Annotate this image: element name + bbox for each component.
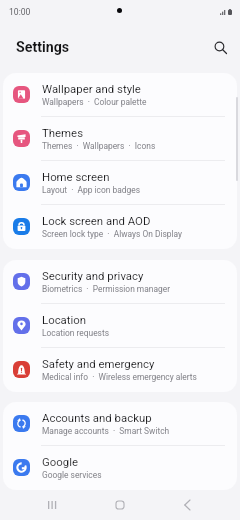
staticText: Screen lock type · Always On Display [42, 229, 182, 239]
staticText: Security and privacy [42, 269, 144, 282]
staticText: Themes [42, 126, 84, 139]
staticText: Home screen [42, 170, 110, 183]
staticText: Manage accounts · Smart Switch [42, 426, 170, 436]
staticText: Layout · App icon badges [42, 185, 141, 195]
button[interactable]: Lock screen and AOD [3, 205, 237, 249]
button[interactable]: Location [3, 304, 237, 348]
button[interactable]: Accounts and backup [3, 402, 237, 446]
staticText: Google services [42, 470, 102, 480]
staticText: Biometrics · Permission manager [42, 284, 170, 294]
staticText: Google [42, 455, 78, 468]
button[interactable]: Home [103, 490, 137, 520]
staticText: Wallpapers · Colour palette [42, 97, 147, 107]
button[interactable]: Wallpaper and style [3, 73, 237, 117]
button[interactable]: Search [209, 36, 233, 60]
staticText: Lock screen and AOD [42, 214, 151, 227]
staticText: Safety and emergency [42, 357, 155, 370]
button[interactable]: Back [172, 490, 206, 520]
button[interactable]: Recent apps [35, 490, 69, 520]
staticText: Wallpaper and style [42, 82, 141, 95]
button[interactable]: Google [3, 446, 237, 490]
staticText: Location requests [42, 328, 110, 338]
button[interactable]: Security and privacy [3, 260, 237, 304]
staticText: Accounts and backup [42, 411, 152, 424]
button[interactable]: Home screen [3, 161, 237, 205]
staticText: Medical info · Wireless emergency alerts [42, 372, 197, 382]
button[interactable]: Safety and emergency [3, 348, 237, 392]
staticText: 10:00 [9, 7, 31, 17]
staticText: Location [42, 313, 87, 326]
button[interactable]: Themes [3, 117, 237, 161]
staticText: Settings [16, 39, 70, 56]
staticText: Themes · Wallpapers · Icons [42, 141, 156, 151]
